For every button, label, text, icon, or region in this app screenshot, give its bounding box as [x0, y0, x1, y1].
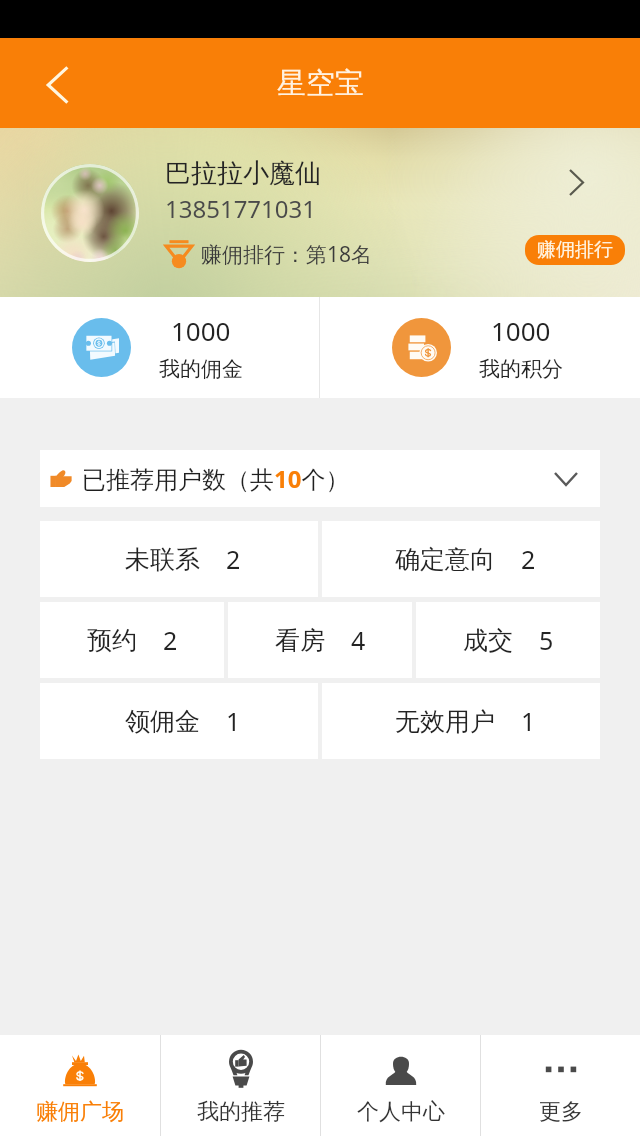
staticText: 已推荐用户数（共10个）	[82, 462, 350, 495]
staticText: 赚佣排行	[537, 238, 613, 262]
staticText: 2	[226, 542, 241, 576]
button[interactable]: 1000	[0, 297, 319, 398]
staticText: 确定意向	[395, 544, 495, 575]
button[interactable]: 个人中心	[321, 1035, 480, 1136]
button[interactable]: 赚佣排行	[525, 235, 625, 265]
staticText: 巴拉拉小魔仙	[165, 157, 321, 190]
staticText: 赚佣广场	[36, 1098, 124, 1126]
staticText: 我的推荐	[197, 1098, 285, 1126]
staticText: 无效用户	[395, 706, 495, 737]
staticText: 星空宝	[277, 65, 364, 102]
staticText: 预约	[87, 625, 137, 656]
staticText: 1000	[491, 313, 551, 348]
staticText: 我的佣金	[159, 356, 243, 382]
button[interactable]: 看房	[228, 602, 412, 678]
staticText: 13851771031	[165, 192, 317, 225]
button[interactable]: 赚佣广场	[0, 1035, 160, 1136]
button[interactable]: Back	[33, 59, 81, 107]
staticText: 1000	[171, 313, 231, 348]
button[interactable]: 巴拉拉小魔仙	[0, 128, 640, 297]
staticText: 赚佣排行：第18名	[201, 240, 373, 269]
button[interactable]: 更多	[481, 1035, 640, 1136]
button[interactable]: 无效用户	[322, 683, 600, 759]
staticText: 4	[351, 623, 366, 657]
staticText: 2	[521, 542, 536, 576]
staticText: 看房	[275, 625, 325, 656]
button[interactable]: 1000	[320, 297, 640, 398]
button[interactable]: 成交	[416, 602, 600, 678]
staticText: 未联系	[125, 544, 200, 575]
staticText: 1	[521, 704, 536, 738]
staticText: 5	[539, 623, 554, 657]
staticText: 2	[163, 623, 178, 657]
staticText: 成交	[463, 625, 513, 656]
button[interactable]: 我的推荐	[161, 1035, 320, 1136]
staticText: 我的积分	[479, 356, 563, 382]
staticText: 更多	[539, 1098, 583, 1126]
staticText: 1	[226, 704, 241, 738]
staticText: 个人中心	[357, 1098, 445, 1126]
staticText: 领佣金	[125, 706, 200, 737]
button[interactable]: 预约	[40, 602, 224, 678]
button[interactable]: 领佣金	[40, 683, 318, 759]
button[interactable]: 确定意向	[322, 521, 600, 597]
button[interactable]: 已推荐用户数（共10个）	[40, 450, 600, 507]
button[interactable]: 未联系	[40, 521, 318, 597]
